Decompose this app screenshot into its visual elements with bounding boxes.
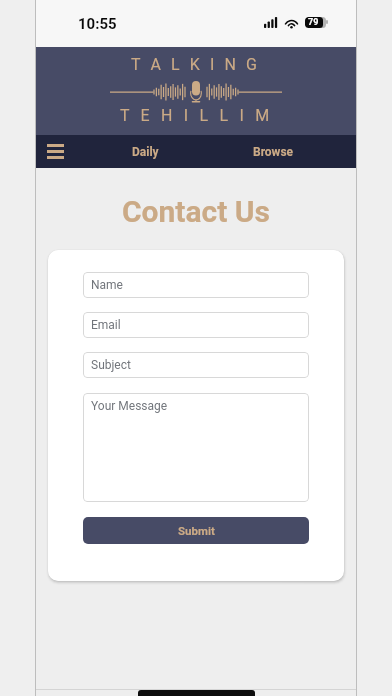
staticText: T E H I L L I M [120, 106, 273, 125]
staticText: Subject [91, 358, 131, 372]
staticText: Email [91, 318, 121, 332]
staticText: Contact Us [36, 194, 356, 229]
staticText: Name [91, 278, 123, 292]
button[interactable]: Submit [83, 517, 309, 544]
staticText: 79 [308, 17, 319, 28]
button[interactable]: Name [83, 272, 309, 298]
staticText: Daily [132, 145, 159, 159]
button[interactable]: Your Message [83, 393, 309, 502]
button[interactable]: Email [83, 312, 309, 338]
button[interactable]: Browse [249, 135, 297, 168]
button[interactable]: Subject [83, 352, 309, 378]
staticText: Submit [178, 524, 215, 537]
staticText: Your Message [91, 399, 168, 413]
staticText: Browse [253, 145, 294, 159]
staticText: 10:55 [78, 15, 117, 33]
staticText: T A L K I N G [131, 55, 261, 74]
button[interactable]: Open navigation menu [39, 135, 72, 168]
button[interactable]: Daily [126, 135, 164, 168]
